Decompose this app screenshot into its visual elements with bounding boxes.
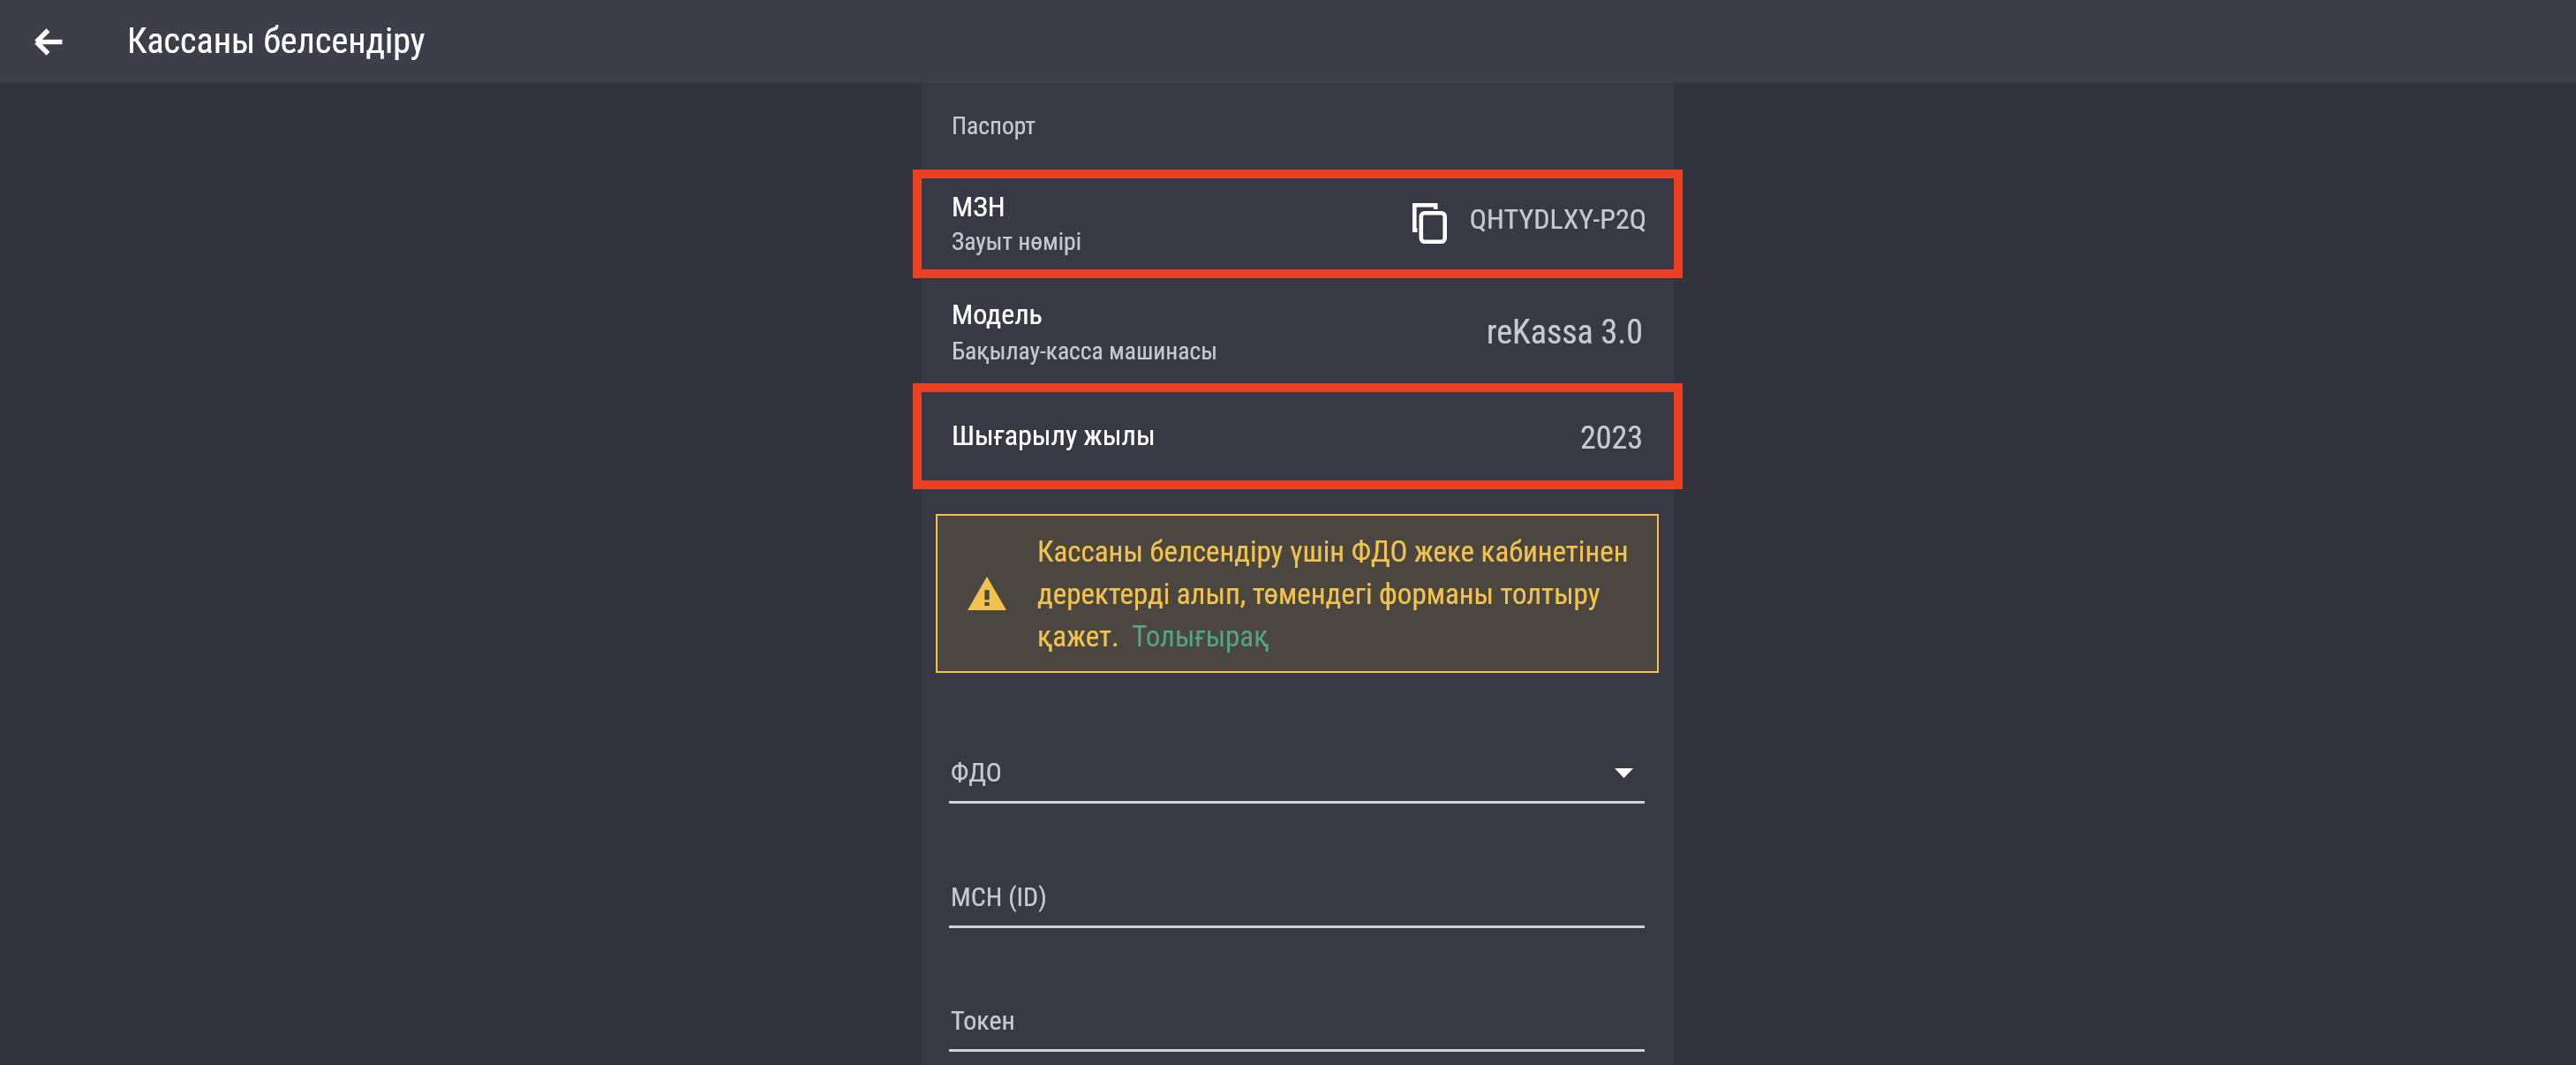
other: Open dropdown (1615, 768, 1633, 778)
staticText: Модель (952, 298, 1043, 331)
staticText: ФДО (951, 757, 1002, 788)
staticText: Шығарылу жылы (952, 419, 1156, 452)
staticText: Кассаны белсендіру (127, 20, 426, 62)
button[interactable]: Шығарылу жылы (922, 392, 1674, 480)
other: Copy (1412, 203, 1448, 245)
staticText: QHTYDLXY-P2Q (1028, 202, 1646, 236)
button[interactable]: Back (13, 0, 82, 83)
staticText: reKassa 3.0 (1025, 313, 1643, 352)
staticText: Зауыт нөмірі (952, 227, 1081, 255)
staticText: Токен (951, 1005, 1015, 1036)
staticText: Кассаны белсендіру үшін ФДО жеке кабинет… (1037, 534, 1655, 653)
button[interactable]: Токен (949, 989, 1645, 1044)
button[interactable]: МЗН (922, 178, 1674, 269)
button[interactable]: Модель (922, 269, 1674, 392)
button[interactable]: Кассаны белсендіру үшін ФДО жеке кабинет… (936, 514, 1659, 673)
button[interactable]: МСН (ID) (949, 865, 1645, 920)
staticText: МЗН (952, 190, 1006, 223)
staticText: Паспорт (952, 111, 1036, 140)
staticText: 2023 (1025, 419, 1643, 457)
button[interactable]: ФДО (949, 741, 1645, 796)
staticText: Бақылау-касса машинасы (952, 336, 1217, 365)
staticText: МСН (ID) (951, 881, 1047, 912)
